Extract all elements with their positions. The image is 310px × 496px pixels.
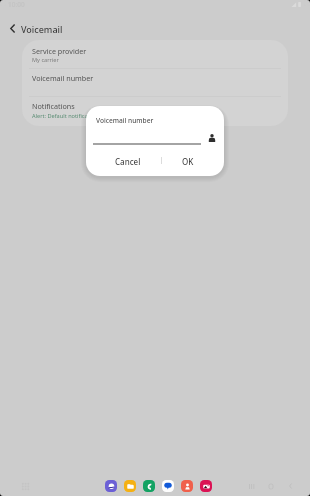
staticText: Cancel: [115, 156, 141, 167]
button[interactable]: Navigate up: [4, 20, 20, 36]
button[interactable]: Phone: [143, 480, 155, 492]
button[interactable]: Notifications: [22, 95, 288, 125]
button[interactable]: Messages: [162, 480, 174, 492]
staticText: Service provider: [32, 46, 87, 56]
staticText: Voicemail: [21, 23, 63, 35]
staticText: Voicemail number: [32, 73, 94, 83]
button[interactable]: Internet: [105, 480, 117, 492]
button[interactable]: Voicemail number: [22, 67, 288, 95]
staticText: Voicemail number: [96, 116, 154, 125]
button[interactable]: Cancel: [94, 153, 161, 170]
staticText: OK: [182, 156, 194, 167]
staticText: Notifications: [32, 101, 75, 111]
button[interactable]: My Files: [124, 480, 136, 492]
button[interactable]: Select contact: [205, 131, 219, 145]
button[interactable]: OK: [159, 153, 217, 170]
button[interactable]: Gallery: [200, 480, 212, 492]
button[interactable]: Contacts: [181, 480, 193, 492]
staticText: Alert: Default notification sound: [32, 112, 116, 120]
button[interactable]: Service provider: [22, 40, 288, 70]
staticText: My carrier: [32, 56, 59, 64]
